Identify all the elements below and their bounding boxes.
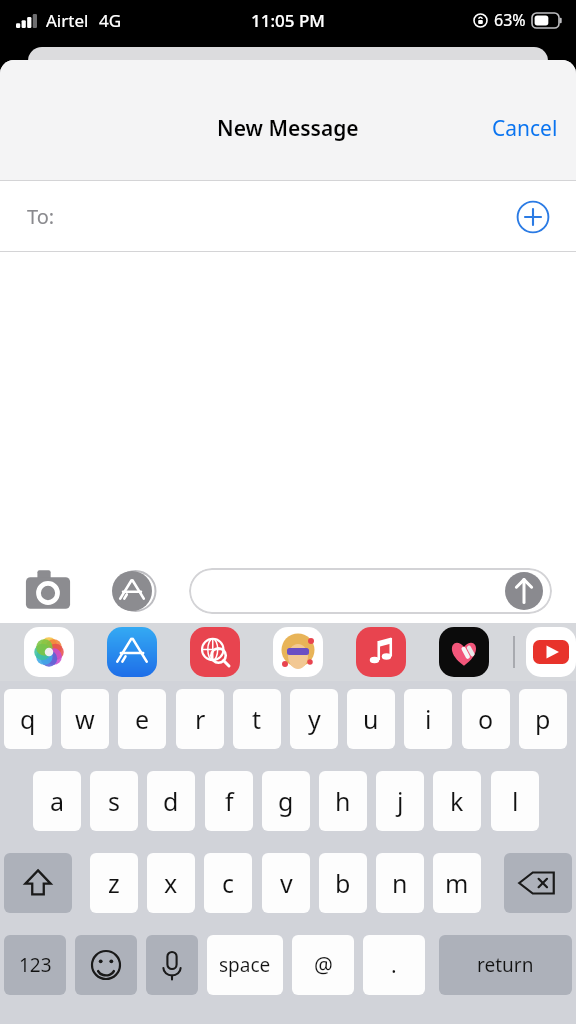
staticText: r: [195, 702, 206, 736]
button[interactable]: j: [376, 771, 424, 831]
staticText: .: [391, 951, 397, 980]
button[interactable]: Cancel: [474, 104, 576, 153]
button[interactable]: p: [519, 689, 567, 749]
staticText: b: [335, 866, 351, 900]
button[interactable]: Add contact: [516, 200, 550, 234]
button[interactable]: o: [462, 689, 510, 749]
button[interactable]: x: [147, 853, 195, 913]
staticText: i: [425, 702, 432, 736]
button[interactable]: Emoji: [75, 935, 137, 995]
button[interactable]: To:: [0, 181, 576, 252]
staticText: @: [314, 951, 333, 980]
button[interactable]: e: [118, 689, 166, 749]
button[interactable]: y: [290, 689, 338, 749]
staticText: q: [20, 702, 36, 736]
button[interactable]: c: [204, 853, 252, 913]
button[interactable]: Memoji: [273, 627, 323, 677]
button[interactable]: g: [262, 771, 310, 831]
button[interactable]: l: [491, 771, 539, 831]
staticText: j: [397, 784, 404, 818]
staticText: 123: [19, 952, 52, 978]
staticText: d: [163, 784, 179, 818]
button[interactable]: return: [439, 935, 572, 995]
button[interactable]: App Store: [107, 627, 157, 677]
staticText: o: [478, 702, 494, 736]
button[interactable]: u: [347, 689, 395, 749]
button[interactable]: Shift: [4, 853, 72, 913]
button[interactable]: f: [205, 771, 253, 831]
staticText: l: [512, 784, 519, 818]
staticText: s: [108, 784, 120, 818]
staticText: 4G: [99, 9, 122, 32]
button[interactable]: t: [233, 689, 281, 749]
staticText: f: [225, 784, 234, 818]
button[interactable]: Camera: [24, 567, 72, 615]
staticText: x: [164, 866, 178, 900]
button[interactable]: a: [33, 771, 81, 831]
staticText: v: [280, 866, 293, 900]
button[interactable]: .: [363, 935, 425, 995]
button[interactable]: 123: [4, 935, 66, 995]
staticText: Cancel: [492, 114, 558, 143]
staticText: return: [477, 952, 534, 978]
button[interactable]: h: [319, 771, 367, 831]
button[interactable]: Dictation: [146, 935, 198, 995]
staticText: h: [335, 784, 351, 818]
staticText: New Message: [217, 114, 359, 143]
button[interactable]: @: [292, 935, 354, 995]
button[interactable]: r: [176, 689, 224, 749]
staticText: z: [108, 866, 120, 900]
button[interactable]: q: [4, 689, 52, 749]
button[interactable]: d: [147, 771, 195, 831]
staticText: 11:05 PM: [251, 9, 325, 32]
button[interactable]: Send: [505, 572, 543, 610]
staticText: space: [219, 952, 271, 978]
button[interactable]: YouTube: [526, 627, 576, 677]
button[interactable]: w: [61, 689, 109, 749]
button[interactable]: k: [433, 771, 481, 831]
staticText: u: [363, 702, 379, 736]
button[interactable]: z: [90, 853, 138, 913]
staticText: Airtel: [46, 9, 89, 32]
staticText: c: [222, 866, 235, 900]
staticText: n: [392, 866, 408, 900]
staticText: w: [75, 702, 95, 736]
button[interactable]: iMessage apps: [108, 567, 156, 615]
staticText: y: [308, 702, 321, 736]
button[interactable]: m: [433, 853, 481, 913]
button[interactable]: Photos: [24, 627, 74, 677]
button[interactable]: s: [90, 771, 138, 831]
button[interactable]: [189, 568, 552, 614]
button[interactable]: i: [404, 689, 452, 749]
staticText: To:: [27, 203, 55, 230]
button[interactable]: space: [207, 935, 283, 995]
staticText: p: [535, 702, 551, 736]
button[interactable]: Images: [190, 627, 240, 677]
staticText: g: [278, 784, 294, 818]
button[interactable]: Digital Touch: [439, 627, 489, 677]
staticText: a: [50, 784, 65, 818]
staticText: e: [135, 702, 150, 736]
button[interactable]: Music: [356, 627, 406, 677]
button[interactable]: v: [262, 853, 310, 913]
staticText: t: [252, 702, 262, 736]
button[interactable]: n: [376, 853, 424, 913]
button[interactable]: Backspace: [504, 853, 572, 913]
staticText: k: [450, 784, 464, 818]
staticText: 63%: [494, 9, 526, 31]
staticText: m: [445, 866, 469, 900]
button[interactable]: b: [319, 853, 367, 913]
